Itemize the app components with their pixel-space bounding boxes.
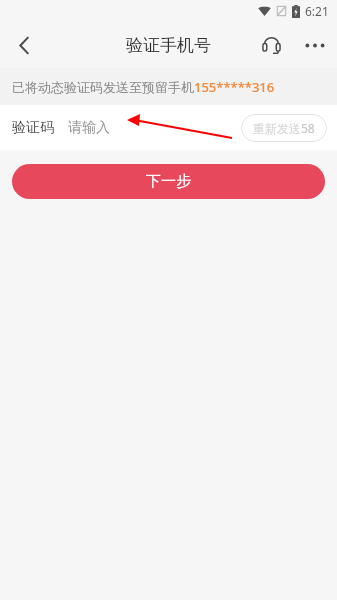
staticText: 验证手机号 xyxy=(126,35,211,56)
button[interactable]: Back xyxy=(0,22,48,68)
staticText: 已将动态验证码发送至预留手机155*****316 xyxy=(12,78,275,96)
staticText: 请输入 xyxy=(68,119,110,137)
button[interactable]: 请输入 xyxy=(68,105,241,150)
staticText: 重新发送58 xyxy=(253,120,315,136)
button[interactable]: 下一步 xyxy=(12,164,325,199)
staticText: 下一步 xyxy=(146,172,191,191)
button[interactable]: 重新发送58 xyxy=(241,114,327,142)
staticText: 验证码 xyxy=(12,119,54,137)
staticText: 6:21 xyxy=(305,3,329,19)
button[interactable]: More options xyxy=(293,22,337,68)
button[interactable]: Customer service xyxy=(249,22,293,68)
